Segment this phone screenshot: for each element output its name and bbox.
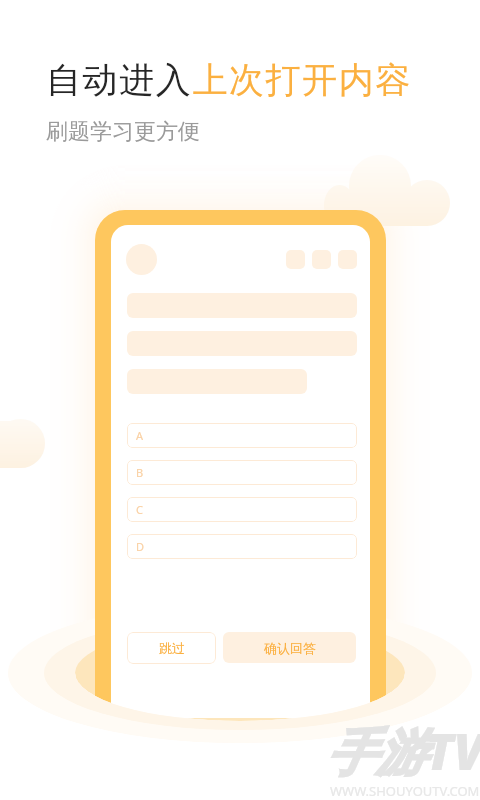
button[interactable]: 确认回答 [223,632,356,663]
staticText: D [136,539,145,554]
staticText: 刷题学习更方便 [46,118,200,146]
staticText: 确认回答 [264,640,316,656]
staticText: 跳过 [159,640,185,656]
button[interactable]: B [127,460,357,485]
staticText: 手游TV [326,717,480,785]
staticText: WWW.SHOUYOUTV.COM [330,782,480,800]
button[interactable]: 跳过 [127,632,216,664]
button[interactable]: A [127,423,357,448]
button[interactable]: D [127,534,357,559]
staticText: 自动进入上次打开内容 [46,58,413,102]
staticText: B [136,465,144,480]
staticText: C [136,502,143,517]
button[interactable]: C [127,497,357,522]
staticText: A [136,428,144,443]
